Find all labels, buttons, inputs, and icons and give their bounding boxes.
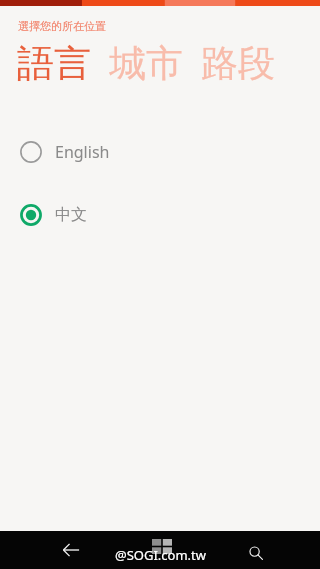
staticText: 城市 — [109, 40, 183, 87]
staticText: 選擇您的所在位置 — [18, 19, 106, 33]
button[interactable]: Search — [242, 539, 270, 567]
button[interactable]: 中文 — [0, 198, 320, 232]
staticText: English — [55, 141, 110, 163]
button[interactable]: Start — [149, 533, 175, 559]
button[interactable]: 語言 — [17, 40, 91, 87]
staticText: @SOGI.com.tw — [115, 546, 206, 564]
staticText: 語言 — [17, 40, 91, 87]
staticText: 路段 — [201, 40, 275, 87]
button[interactable]: Back — [56, 535, 86, 565]
button[interactable]: English — [0, 135, 320, 169]
button[interactable]: 城市 — [109, 40, 183, 87]
button[interactable]: 路段 — [201, 40, 275, 87]
staticText: 中文 — [55, 205, 87, 225]
